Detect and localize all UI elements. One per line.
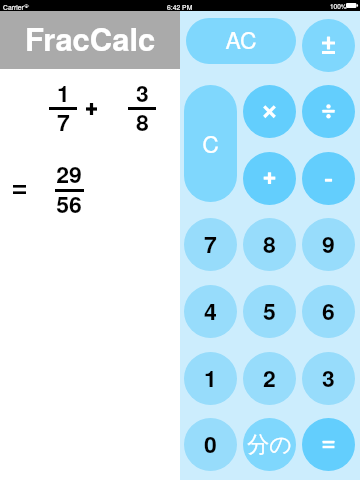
staticText: 3 — [322, 361, 335, 394]
button[interactable]: 9 — [302, 218, 355, 271]
staticText: 5 — [263, 294, 276, 327]
staticText: 56 — [56, 187, 82, 220]
button[interactable]: 4 — [184, 285, 237, 338]
staticText: 7 — [57, 105, 70, 138]
button[interactable]: AC — [186, 18, 296, 64]
staticText: 0 — [204, 427, 217, 460]
button[interactable]: Multiply — [243, 85, 296, 138]
button[interactable]: 3 — [302, 352, 355, 405]
staticText: 7 — [204, 227, 217, 260]
staticText: 9 — [322, 227, 335, 260]
button[interactable]: Minus — [302, 152, 355, 205]
button[interactable]: 分の — [243, 418, 296, 471]
staticText: 8 — [263, 227, 276, 260]
button[interactable]: 2 — [243, 352, 296, 405]
button[interactable]: Plus — [243, 152, 296, 205]
button[interactable]: 0 — [184, 418, 237, 471]
button[interactable]: 8 — [243, 218, 296, 271]
staticText: 2 — [263, 361, 276, 394]
button[interactable]: 7 — [184, 218, 237, 271]
staticText: 分の — [247, 431, 292, 459]
button[interactable]: Plus minus — [302, 19, 355, 72]
staticText: 6:42 PM — [167, 2, 193, 12]
staticText: 100% — [330, 2, 347, 11]
staticText: 1 — [204, 361, 217, 394]
staticText: C — [202, 127, 219, 160]
staticText: FracCalc — [25, 16, 156, 60]
staticText: AC — [225, 23, 257, 56]
staticText: 29 — [56, 157, 82, 190]
staticText: Carrier — [3, 2, 24, 12]
button[interactable]: C — [184, 85, 237, 202]
staticText: 6 — [322, 294, 335, 327]
staticText: 1 — [57, 76, 70, 109]
button[interactable]: 1 — [184, 352, 237, 405]
staticText: 4 — [204, 294, 217, 327]
button[interactable]: Equals — [302, 418, 355, 471]
staticText: 8 — [136, 105, 149, 138]
button[interactable]: Divide — [302, 85, 355, 138]
staticText: 3 — [136, 76, 149, 109]
button[interactable]: 6 — [302, 285, 355, 338]
button[interactable]: 5 — [243, 285, 296, 338]
